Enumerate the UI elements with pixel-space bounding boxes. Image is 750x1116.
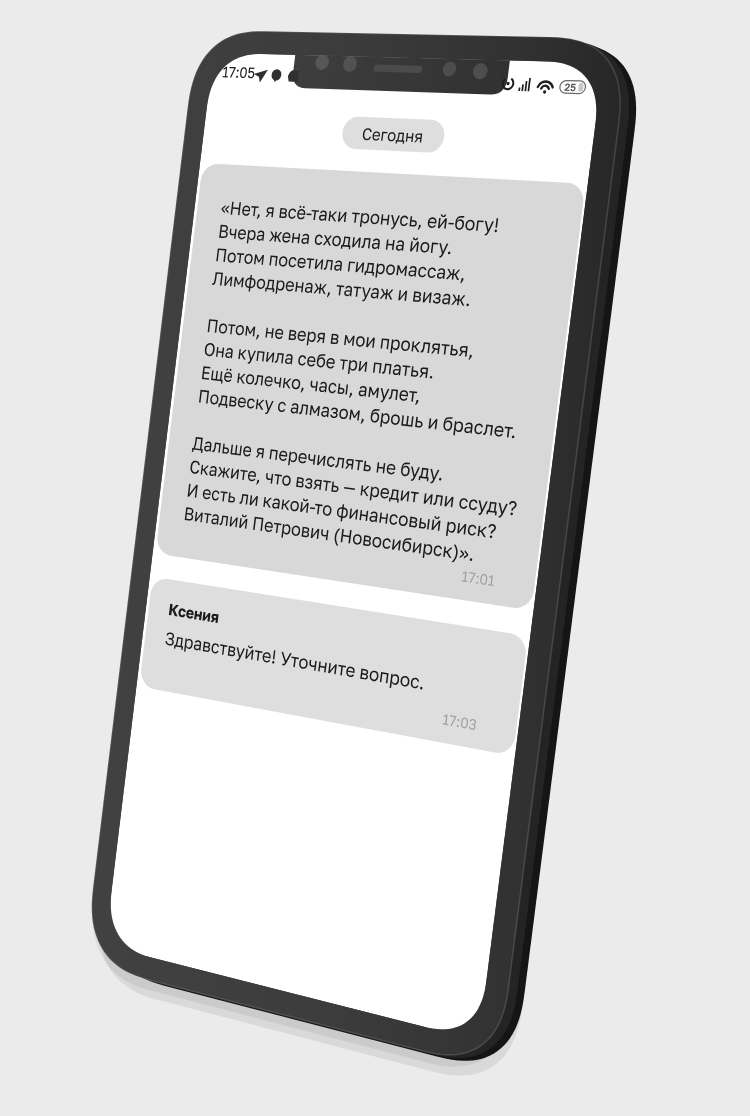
button[interactable]: Messenger conversation on a phone: [0, 0, 750, 1116]
